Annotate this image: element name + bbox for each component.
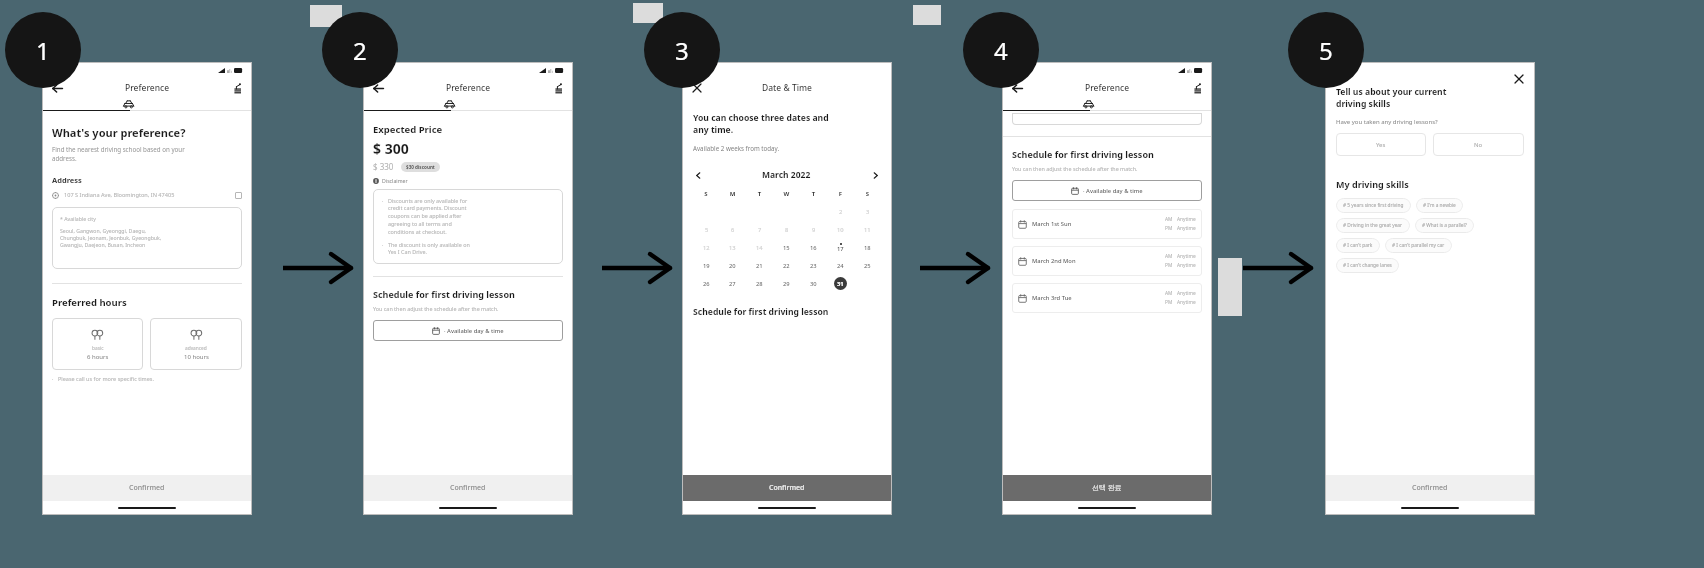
button[interactable]: 19: [700, 259, 713, 272]
button[interactable]: Back: [50, 81, 65, 96]
button[interactable]: # I'm a newbie: [1416, 198, 1463, 213]
button[interactable]: 13: [726, 241, 739, 254]
button[interactable]: Confirmed: [1325, 475, 1535, 501]
button[interactable]: 선택 완료: [1002, 475, 1212, 501]
button[interactable]: 11: [861, 223, 874, 236]
button[interactable]: # I can't change lanes: [1336, 258, 1399, 273]
button[interactable]: Confirmed: [363, 475, 573, 501]
button[interactable]: 9: [807, 223, 820, 236]
button[interactable]: Cart: [552, 82, 565, 95]
button[interactable]: # I can't parallel my car: [1385, 238, 1452, 253]
button[interactable]: March 2nd Mon: [1012, 246, 1202, 276]
button[interactable]: 3: [861, 205, 874, 218]
button[interactable]: # I can't park: [1336, 238, 1380, 253]
staticText: 29: [783, 280, 790, 288]
button[interactable]: Back: [371, 81, 386, 96]
button[interactable]: 24: [834, 259, 847, 272]
button[interactable]: Previous month: [693, 170, 704, 181]
button[interactable]: 2: [834, 205, 847, 218]
staticText: 24: [837, 262, 844, 270]
button[interactable]: 30: [807, 277, 820, 290]
button[interactable]: 15: [780, 241, 793, 254]
staticText: 9: [812, 226, 816, 234]
button[interactable]: 22: [780, 259, 793, 272]
button[interactable]: 107 S Indiana Ave, Bloomington, IN 47405: [52, 191, 242, 199]
staticText: · Available day & time: [1083, 187, 1143, 195]
staticText: 12: [703, 244, 710, 252]
button[interactable]: Yes: [1336, 133, 1426, 156]
staticText: S: [693, 190, 719, 198]
staticText: Anytime: [1177, 216, 1196, 223]
button[interactable]: 12: [700, 241, 713, 254]
button[interactable]: 21: [753, 259, 766, 272]
staticText: Have you taken any driving lessons?: [1336, 118, 1438, 126]
staticText: * Available city: [60, 215, 96, 222]
button[interactable]: 6: [726, 223, 739, 236]
staticText: Confirmed: [450, 483, 486, 493]
staticText: basic: [92, 345, 104, 352]
button[interactable]: basic: [52, 318, 143, 370]
button[interactable]: 7: [753, 223, 766, 236]
button[interactable]: 10: [834, 223, 847, 236]
button[interactable]: March 1st Sun: [1012, 209, 1202, 239]
staticText: $ 300: [373, 139, 409, 158]
button[interactable]: 17: [834, 241, 847, 254]
staticText: Disclaimer: [382, 177, 408, 184]
staticText: March 3rd Tue: [1032, 294, 1072, 302]
staticText: # I'm a newbie: [1423, 202, 1456, 209]
staticText: Anytime: [1177, 262, 1196, 269]
staticText: T: [800, 190, 827, 198]
button[interactable]: 16: [807, 241, 820, 254]
staticText: 6 hours: [87, 353, 109, 361]
button[interactable]: Confirmed: [42, 475, 252, 501]
button[interactable]: # What is a parallel?: [1415, 218, 1474, 233]
staticText: You can then adjust the schedule after t…: [1012, 165, 1138, 172]
button[interactable]: Back: [1333, 81, 1348, 96]
button[interactable]: 29: [780, 277, 793, 290]
button[interactable]: 31: [834, 277, 847, 290]
button[interactable]: · Available day & time: [1012, 180, 1202, 201]
button[interactable]: Confirmed: [682, 475, 892, 501]
button[interactable]: 14: [753, 241, 766, 254]
button[interactable]: 25: [861, 259, 874, 272]
button[interactable]: # 5 years since first driving: [1336, 198, 1411, 213]
staticText: Preference: [125, 82, 170, 94]
button[interactable]: Close: [690, 81, 704, 95]
staticText: Schedule for first driving lesson: [693, 306, 829, 318]
button[interactable]: 27: [726, 277, 739, 290]
button[interactable]: 23: [807, 259, 820, 272]
staticText: 27: [729, 280, 736, 288]
button[interactable]: · Available day & time: [373, 320, 563, 341]
button[interactable]: March 3rd Tue: [1012, 283, 1202, 313]
button[interactable]: 5: [700, 223, 713, 236]
button[interactable]: Next month: [870, 170, 881, 181]
staticText: M: [719, 190, 746, 198]
button[interactable]: Cart: [1514, 82, 1527, 95]
staticText: # Driving in the great year: [1343, 222, 1403, 229]
other: Back: [373, 83, 384, 94]
staticText: 17: [837, 245, 844, 253]
button[interactable]: No: [1433, 133, 1524, 156]
button[interactable]: Close: [1512, 72, 1526, 86]
staticText: PM: [1165, 225, 1173, 232]
button[interactable]: # Driving in the great year: [1336, 218, 1410, 233]
button[interactable]: Disclaimer: [373, 177, 408, 184]
staticText: Available 2 weeks from today.: [693, 144, 780, 152]
staticText: 3: [866, 208, 870, 216]
staticText: 28: [756, 280, 763, 288]
button[interactable]: 8: [780, 223, 793, 236]
button[interactable]: 18: [861, 241, 874, 254]
button[interactable]: 20: [726, 259, 739, 272]
button[interactable]: Cart: [231, 82, 244, 95]
button[interactable]: 28: [753, 277, 766, 290]
staticText: F: [827, 190, 854, 198]
button[interactable]: advanced: [150, 318, 242, 370]
staticText: 6: [731, 226, 735, 234]
staticText: Date & Time: [762, 82, 812, 94]
button[interactable]: Cart: [1191, 82, 1204, 95]
button[interactable]: Back: [1010, 81, 1025, 96]
button[interactable]: 26: [700, 277, 713, 290]
staticText: 7: [758, 226, 762, 234]
staticText: AM: [1165, 253, 1173, 260]
staticText: Anytime: [1177, 225, 1196, 232]
